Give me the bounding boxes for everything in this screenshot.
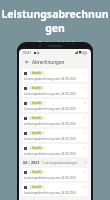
button[interactable]: 04 | 2023 bbox=[22, 159, 88, 166]
staticText: Leistungsabrechnung vom 24.05.2023 bbox=[24, 191, 76, 195]
staticText: 09:41 bbox=[23, 51, 32, 55]
staticText: Leistungsabrechnung vom 24.05.2023 bbox=[24, 176, 76, 180]
staticText: bezahlt bbox=[32, 86, 42, 90]
staticText: Leistungsabrechnungen bbox=[0, 7, 110, 35]
button[interactable]: bezahlt bbox=[22, 144, 88, 157]
staticText: Leistungsabrechnung vom 24.05.2023 bbox=[24, 137, 76, 141]
staticText: bezahlt bbox=[32, 170, 42, 174]
staticText: bezahlt bbox=[32, 131, 42, 135]
staticText: Leistungsabrechnung vom 24.05.2023 bbox=[24, 122, 76, 126]
staticText: Leistungsabrechnung vom 24.05.2023 bbox=[24, 77, 76, 81]
staticText: Leistungsabrechnung vom 24.05.2023 bbox=[24, 92, 76, 96]
staticText: bezahlt bbox=[32, 185, 42, 189]
staticText: bezahlt bbox=[32, 146, 42, 150]
staticText: 04 | 2023 bbox=[23, 160, 40, 165]
staticText: 1 Leistungsabrechnungen bbox=[42, 161, 78, 165]
staticText: Abrechnungen bbox=[32, 59, 65, 65]
button[interactable]: bezahlt bbox=[22, 84, 88, 97]
button[interactable]: bezahlt bbox=[22, 99, 88, 112]
button[interactable]: bezahlt bbox=[22, 69, 88, 82]
button[interactable]: bezahlt bbox=[22, 129, 88, 142]
staticText: bezahlt bbox=[32, 116, 42, 120]
button[interactable]: bezahlt bbox=[22, 183, 88, 196]
staticText: bezahlt bbox=[32, 101, 42, 105]
staticText: bezahlt bbox=[32, 71, 42, 75]
button[interactable]: bezahlt bbox=[22, 168, 88, 181]
staticText: Direkt und digital Empfangen Sie ab jetz… bbox=[19, 39, 92, 57]
staticText: Leistungsabrechnung vom 24.05.2023 bbox=[24, 152, 76, 156]
staticText: Leistungsabrechnung vom 24.05.2023 bbox=[24, 107, 76, 111]
button[interactable]: bezahlt bbox=[22, 114, 88, 127]
button[interactable]: Back bbox=[23, 58, 30, 65]
